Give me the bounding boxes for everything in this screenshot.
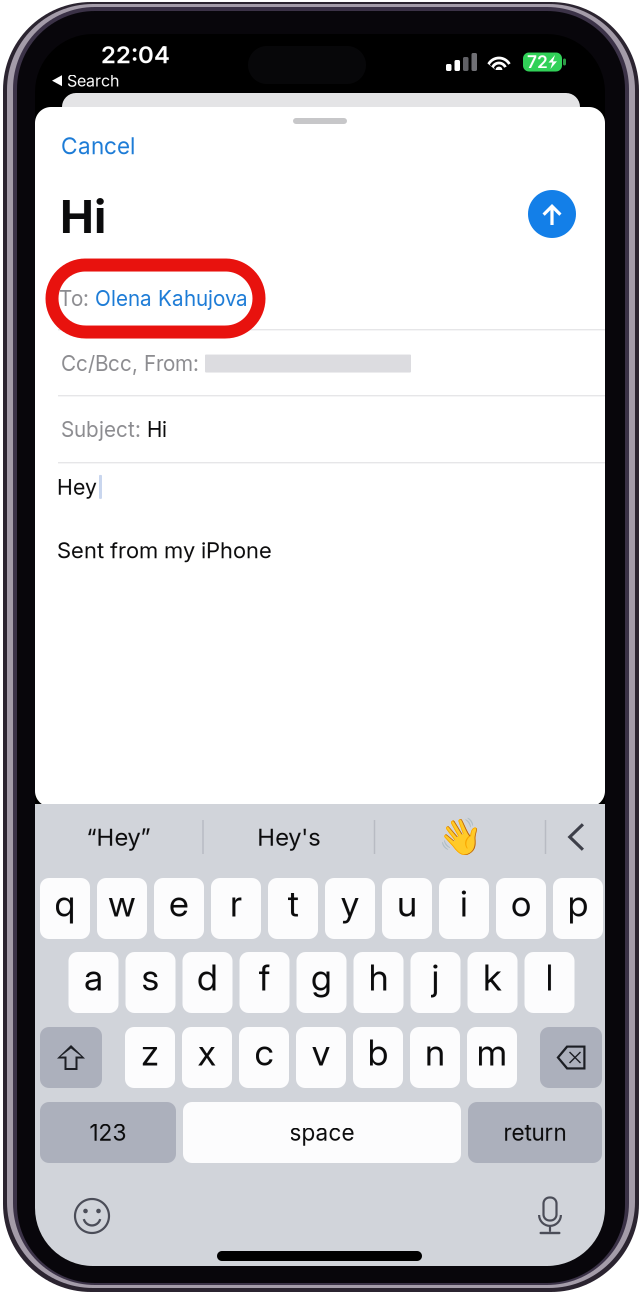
staticText: e <box>169 882 189 925</box>
button[interactable]: c <box>239 1027 289 1088</box>
button[interactable]: w <box>97 878 147 939</box>
staticText: Cc/Bcc, From: <box>61 351 205 376</box>
staticText: a <box>84 956 103 999</box>
button[interactable]: Cancel <box>61 129 181 163</box>
staticText: z <box>141 1031 159 1074</box>
button[interactable]: v <box>296 1027 346 1088</box>
staticText: space <box>289 1119 354 1146</box>
button[interactable]: space <box>183 1102 461 1163</box>
button[interactable]: Delete <box>540 1027 602 1088</box>
button[interactable]: t <box>268 878 318 939</box>
staticText: g <box>311 956 332 999</box>
staticText: x <box>197 1031 216 1074</box>
staticText: Sent from my iPhone <box>57 537 272 564</box>
button[interactable]: l <box>524 952 574 1013</box>
staticText: y <box>340 882 359 925</box>
button[interactable]: m <box>467 1027 517 1088</box>
staticText: d <box>197 956 218 999</box>
button[interactable]: More suggestions <box>546 804 605 870</box>
staticText: r <box>230 882 242 925</box>
staticText: m <box>476 1031 507 1074</box>
staticText: v <box>311 1031 330 1074</box>
button[interactable]: g <box>296 952 346 1013</box>
staticText: return <box>503 1119 566 1146</box>
staticText: c <box>254 1031 273 1074</box>
button[interactable]: b <box>353 1027 403 1088</box>
staticText: q <box>54 882 75 925</box>
staticText: To: <box>59 286 95 311</box>
staticText: Cancel <box>61 132 135 160</box>
button[interactable]: z <box>125 1027 175 1088</box>
button[interactable]: r <box>211 878 261 939</box>
button[interactable]: 123 <box>40 1102 176 1163</box>
button[interactable]: “Hey” <box>35 804 202 870</box>
button[interactable]: h <box>353 952 403 1013</box>
staticText: Olena Kahujova <box>95 286 248 311</box>
staticText: 72 <box>527 51 548 72</box>
staticText: b <box>367 1031 388 1074</box>
staticText: u <box>397 882 417 925</box>
staticText: p <box>567 882 588 925</box>
staticText: t <box>287 882 298 925</box>
staticText: i <box>460 882 468 925</box>
staticText: n <box>425 1031 445 1074</box>
button[interactable]: Shift <box>40 1027 102 1088</box>
button[interactable]: f <box>239 952 289 1013</box>
button[interactable]: s <box>125 952 175 1013</box>
button[interactable]: k <box>467 952 517 1013</box>
staticText: 123 <box>89 1119 126 1146</box>
button[interactable]: j <box>410 952 460 1013</box>
staticText: Subject: <box>61 417 147 442</box>
staticText: Hi <box>147 417 167 442</box>
staticText: o <box>511 882 531 925</box>
button[interactable]: e <box>154 878 204 939</box>
staticText: f <box>258 956 270 999</box>
button[interactable]: y <box>325 878 375 939</box>
button[interactable]: d <box>182 952 232 1013</box>
staticText: w <box>108 882 136 925</box>
staticText: 👋 <box>437 816 482 858</box>
button[interactable]: Dictate <box>530 1196 570 1236</box>
staticText: s <box>141 956 159 999</box>
button[interactable]: n <box>410 1027 460 1088</box>
staticText: Search <box>67 71 119 90</box>
button[interactable]: return <box>468 1102 602 1163</box>
button[interactable]: Hey's <box>204 804 374 870</box>
staticText: “Hey” <box>86 822 150 851</box>
button[interactable]: p <box>553 878 603 939</box>
staticText: Hey <box>57 474 97 500</box>
staticText: l <box>545 956 553 999</box>
button[interactable]: o <box>496 878 546 939</box>
button[interactable]: q <box>40 878 90 939</box>
button[interactable]: Send <box>528 190 576 238</box>
button[interactable]: 👋 <box>375 804 545 870</box>
button[interactable]: i <box>439 878 489 939</box>
button[interactable]: Emoji keyboard <box>72 1196 112 1236</box>
staticText: h <box>368 956 388 999</box>
staticText: k <box>483 956 502 999</box>
button[interactable]: u <box>382 878 432 939</box>
staticText: Hey's <box>257 822 320 851</box>
button[interactable]: x <box>182 1027 232 1088</box>
button[interactable]: a <box>68 952 118 1013</box>
staticText: Hi <box>60 189 106 244</box>
staticText: 22:04 <box>101 40 170 69</box>
staticText: j <box>431 956 439 999</box>
